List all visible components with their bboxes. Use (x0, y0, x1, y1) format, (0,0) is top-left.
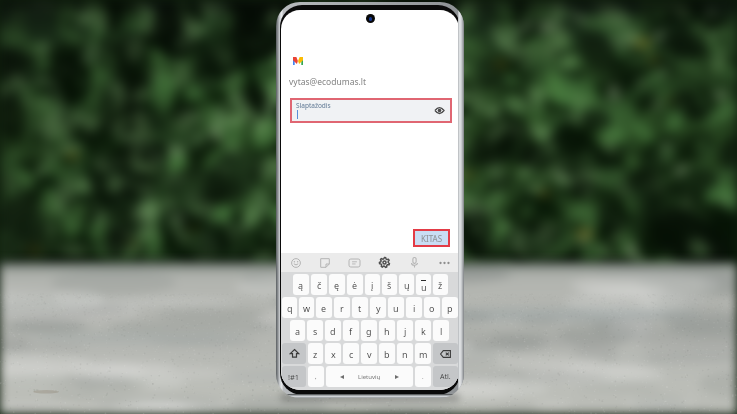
staticText: č (317, 279, 322, 291)
staticText: ę (334, 279, 340, 291)
button[interactable]: p (442, 297, 458, 318)
button[interactable]: č (311, 274, 327, 295)
staticText: ž (438, 279, 443, 291)
staticText: h (384, 325, 390, 337)
staticText: w (303, 302, 311, 314)
button[interactable]: ą (293, 274, 309, 295)
staticText: n (402, 348, 408, 360)
staticText: m (419, 348, 428, 360)
staticText: u (393, 302, 399, 314)
staticText: o (429, 302, 435, 314)
button[interactable]: u (416, 274, 431, 295)
staticText: r (340, 302, 344, 314)
button[interactable]: mic (399, 253, 429, 272)
button[interactable]: Slaptažodis (290, 98, 452, 123)
staticText: ą (298, 279, 304, 291)
button[interactable]: more (429, 253, 459, 272)
button[interactable]: į (365, 274, 380, 295)
staticText: f (349, 325, 353, 337)
button[interactable]: n (397, 343, 413, 364)
button[interactable]: e (316, 297, 332, 318)
button[interactable]: t (352, 297, 368, 318)
button[interactable]: gif (339, 253, 369, 272)
staticText: d (330, 325, 336, 337)
button[interactable]: h (379, 320, 395, 341)
button[interactable]: sticker (310, 253, 339, 272)
staticText: j (404, 325, 407, 337)
staticText: z (313, 348, 318, 360)
staticText: t (358, 302, 362, 314)
button[interactable]: Backspace (433, 343, 458, 364)
button[interactable]: KITAS (413, 229, 450, 247)
button[interactable]: š (382, 274, 397, 295)
button[interactable]: c (343, 343, 359, 364)
button[interactable]: r (334, 297, 350, 318)
button[interactable]: v (361, 343, 377, 364)
staticText: į (371, 279, 374, 291)
button[interactable]: ų (399, 274, 414, 295)
other: Show password (435, 107, 444, 114)
staticText: p (447, 302, 453, 314)
staticText: ų (404, 279, 410, 291)
staticText: i (413, 302, 416, 314)
button[interactable]: k (415, 320, 431, 341)
staticText: x (331, 348, 336, 360)
button[interactable]: gear (369, 253, 399, 272)
button[interactable]: l (433, 320, 449, 341)
staticText: k (421, 325, 426, 337)
staticText: q (287, 302, 293, 314)
staticText: e (321, 302, 327, 314)
other: Shift (290, 349, 299, 358)
staticText: b (384, 348, 390, 360)
staticText: s (313, 325, 318, 337)
button[interactable]: m (415, 343, 431, 364)
button[interactable]: i (406, 297, 422, 318)
staticText: a (295, 325, 301, 337)
staticText: Atl. (440, 372, 451, 382)
button[interactable]: a (290, 320, 305, 341)
staticText: š (387, 279, 392, 291)
staticText: Slaptažodis (296, 101, 331, 110)
button[interactable]: y (370, 297, 386, 318)
button[interactable]: g (361, 320, 377, 341)
button[interactable]: f (343, 320, 359, 341)
button[interactable]: ž (433, 274, 448, 295)
staticText: KITAS (421, 233, 443, 244)
button[interactable]: u (388, 297, 404, 318)
staticText: !#1 (288, 372, 300, 382)
button[interactable]: q (282, 297, 297, 318)
button[interactable]: ę (329, 274, 345, 295)
button[interactable]: s (307, 320, 323, 341)
button[interactable]: emoji (281, 253, 310, 272)
button[interactable]: j (397, 320, 413, 341)
button[interactable]: Atl. (433, 366, 458, 387)
staticText: ė (352, 279, 358, 291)
other: Backspace (440, 350, 451, 358)
staticText: , (315, 373, 317, 381)
button[interactable]: x (325, 343, 341, 364)
staticText: y (376, 302, 381, 314)
button[interactable]: !#1 (282, 366, 306, 387)
button[interactable]: . (415, 366, 431, 387)
staticText: u (421, 281, 427, 293)
button[interactable]: , (308, 366, 324, 387)
button[interactable]: d (325, 320, 341, 341)
button[interactable]: Shift (282, 343, 306, 364)
staticText: Lietuvių (358, 373, 381, 381)
button[interactable]: b (379, 343, 395, 364)
staticText: l (440, 325, 443, 337)
button[interactable]: Lietuvių (326, 366, 413, 387)
staticText: vytas@ecodumas.lt (289, 76, 367, 88)
button[interactable]: o (424, 297, 440, 318)
button[interactable]: ė (347, 274, 363, 295)
button[interactable]: z (308, 343, 323, 364)
button[interactable]: w (299, 297, 314, 318)
staticText: v (367, 348, 372, 360)
staticText: c (349, 348, 354, 360)
staticText: g (366, 325, 372, 337)
staticText: . (422, 373, 424, 381)
